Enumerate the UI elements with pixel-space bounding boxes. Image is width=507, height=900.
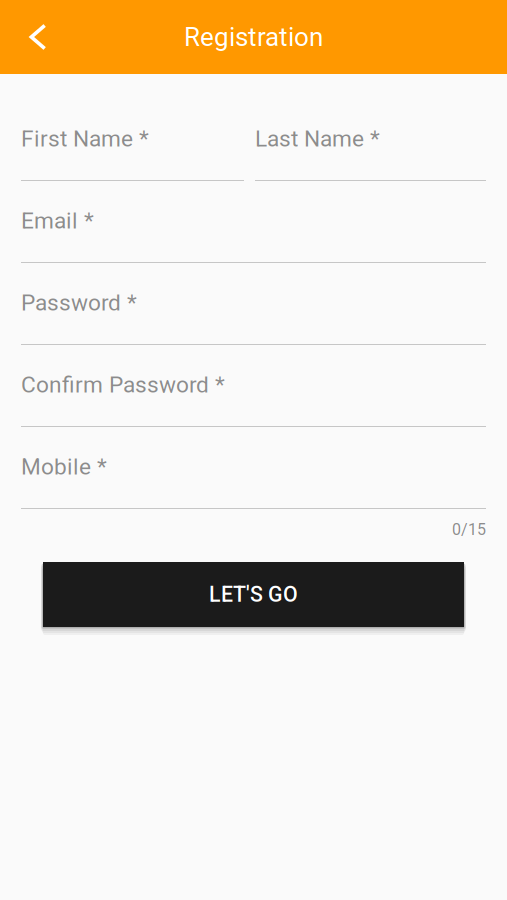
staticText: 0/15 <box>452 520 486 539</box>
button[interactable]: Back <box>10 9 66 65</box>
staticText: Confirm Password * <box>21 371 225 398</box>
button[interactable]: First Name * <box>21 99 244 181</box>
button[interactable]: LET'S GO <box>43 562 464 635</box>
staticText: Mobile * <box>21 453 107 480</box>
staticText: Email * <box>21 207 94 234</box>
button[interactable]: Password * <box>21 263 486 345</box>
staticText: Password * <box>21 289 137 316</box>
button[interactable]: Confirm Password * <box>21 345 486 427</box>
button[interactable]: Mobile * <box>21 427 486 509</box>
staticText: First Name * <box>21 125 149 152</box>
staticText: Last Name * <box>255 125 380 152</box>
button[interactable]: Email * <box>21 181 486 263</box>
staticText: Registration <box>184 22 323 52</box>
staticText: LET'S GO <box>209 582 298 607</box>
button[interactable]: Last Name * <box>255 99 486 181</box>
